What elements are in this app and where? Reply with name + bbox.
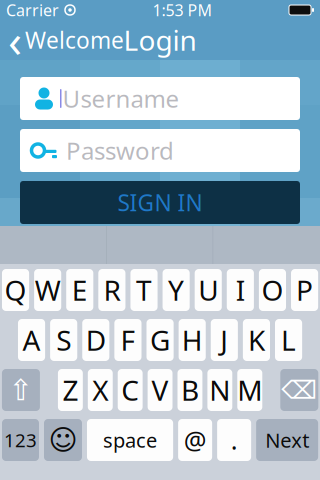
staticText: P bbox=[296, 271, 313, 309]
staticText: Q bbox=[4, 271, 26, 309]
staticText: ⌫ bbox=[281, 376, 317, 404]
button[interactable]: O bbox=[259, 269, 286, 311]
button[interactable]: F bbox=[114, 319, 141, 361]
staticText: W bbox=[35, 271, 61, 309]
staticText: I bbox=[236, 271, 245, 309]
staticText: H bbox=[182, 321, 203, 359]
button[interactable]: Shift bbox=[2, 369, 40, 411]
staticText: ⇧ bbox=[8, 373, 33, 407]
button[interactable]: X bbox=[88, 369, 113, 411]
button[interactable]: SIGN IN bbox=[20, 181, 300, 224]
staticText: 123 bbox=[4, 428, 37, 452]
staticText: ‹ bbox=[8, 10, 22, 70]
button[interactable]: E bbox=[66, 269, 93, 311]
staticText: . bbox=[231, 423, 238, 457]
button[interactable]: D bbox=[82, 319, 109, 361]
button[interactable]: U bbox=[195, 269, 222, 311]
staticText: Z bbox=[62, 371, 78, 409]
button[interactable]: . bbox=[217, 419, 251, 461]
staticText: S bbox=[56, 321, 71, 359]
staticText: U bbox=[198, 271, 218, 309]
button[interactable]: C bbox=[118, 369, 143, 411]
button[interactable]: Delete bbox=[280, 369, 318, 411]
staticText: space bbox=[103, 427, 157, 453]
button[interactable]: 123 bbox=[2, 419, 39, 461]
button[interactable]: A bbox=[18, 319, 45, 361]
button[interactable]: T bbox=[130, 269, 157, 311]
button[interactable]: R bbox=[98, 269, 125, 311]
button[interactable]: H bbox=[179, 319, 206, 361]
button[interactable]: L bbox=[275, 319, 302, 361]
staticText: @ bbox=[184, 423, 207, 457]
button[interactable]: B bbox=[177, 369, 202, 411]
staticText: E bbox=[72, 271, 88, 309]
button[interactable]: P bbox=[291, 269, 318, 311]
button[interactable]: M bbox=[237, 369, 262, 411]
staticText: 1:53 PM bbox=[152, 0, 212, 21]
staticText: A bbox=[23, 321, 41, 359]
button[interactable]: ‹ bbox=[0, 20, 132, 60]
staticText: T bbox=[136, 271, 152, 309]
staticText: J bbox=[220, 321, 228, 359]
button[interactable]: J bbox=[211, 319, 238, 361]
staticText: V bbox=[152, 371, 169, 409]
button[interactable]: @ bbox=[178, 419, 212, 461]
staticText: SIGN IN bbox=[117, 187, 202, 217]
button[interactable]: Z bbox=[58, 369, 83, 411]
button[interactable]: Y bbox=[163, 269, 190, 311]
button[interactable]: space bbox=[87, 419, 173, 461]
button[interactable]: S bbox=[50, 319, 77, 361]
button[interactable]: G bbox=[146, 319, 174, 361]
staticText: O bbox=[261, 271, 283, 309]
staticText: R bbox=[103, 271, 120, 309]
staticText: Username bbox=[62, 83, 179, 114]
staticText: G bbox=[150, 321, 170, 359]
staticText: L bbox=[281, 321, 296, 359]
button[interactable]: K bbox=[243, 319, 270, 361]
staticText: K bbox=[248, 321, 265, 359]
button[interactable]: Next bbox=[256, 419, 318, 461]
staticText: D bbox=[86, 321, 106, 359]
staticText: F bbox=[120, 321, 135, 359]
staticText: Login bbox=[123, 21, 196, 59]
staticText: Y bbox=[168, 271, 184, 309]
button[interactable]: Q bbox=[2, 269, 29, 311]
staticText: Welcome bbox=[25, 25, 124, 55]
staticText: C bbox=[121, 371, 139, 409]
staticText: Next bbox=[265, 427, 309, 453]
button[interactable]: Emoji bbox=[44, 419, 82, 461]
staticText: N bbox=[209, 371, 230, 409]
staticText: X bbox=[92, 371, 108, 409]
staticText: Password bbox=[66, 135, 174, 166]
staticText: M bbox=[237, 371, 262, 409]
staticText: ☺ bbox=[48, 424, 77, 456]
staticText: B bbox=[181, 371, 199, 409]
staticText: Carrier bbox=[6, 0, 59, 21]
button[interactable]: N bbox=[207, 369, 232, 411]
button[interactable]: W bbox=[34, 269, 61, 311]
button[interactable]: V bbox=[148, 369, 172, 411]
button[interactable]: I bbox=[227, 269, 254, 311]
